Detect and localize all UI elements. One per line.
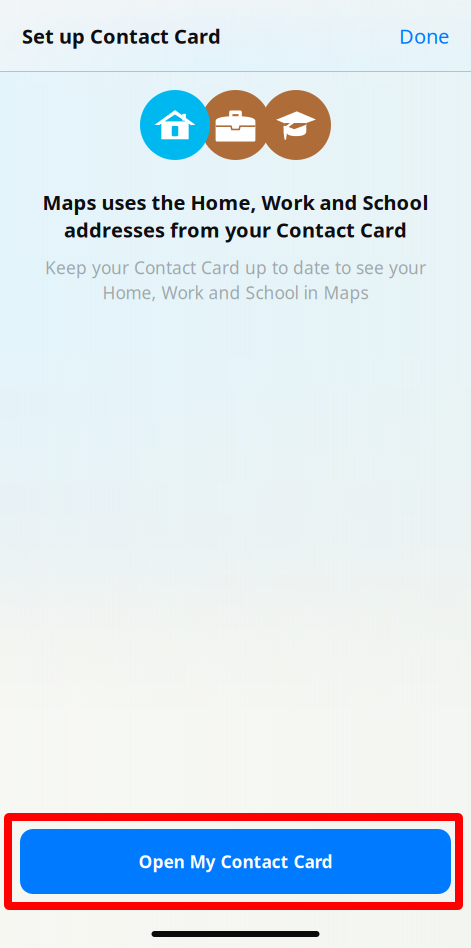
staticText: Done [399, 23, 449, 49]
staticText: Set up Contact Card [22, 23, 221, 49]
staticText: Home, Work and School in Maps [102, 281, 368, 304]
button[interactable]: Done [385, 15, 449, 57]
staticText: Maps uses the Home, Work and School [42, 189, 428, 216]
staticText: addresses from your Contact Card [64, 217, 407, 243]
button[interactable]: Open My Contact Card [20, 829, 451, 894]
staticText: Keep your Contact Card up to date to see… [45, 256, 426, 279]
staticText: Open My Contact Card [138, 850, 332, 873]
